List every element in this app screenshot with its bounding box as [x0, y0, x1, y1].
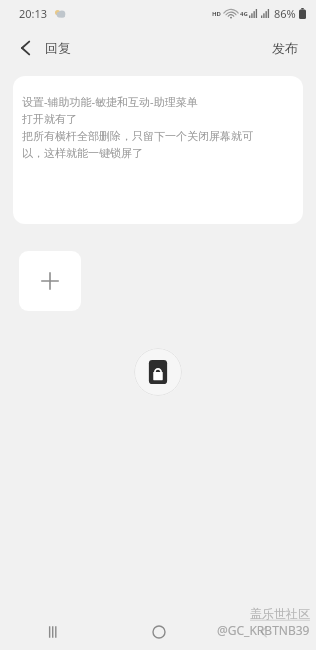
- button[interactable]: Recents: [0, 614, 106, 650]
- staticText: 发布: [272, 40, 298, 56]
- other: Back: [16, 38, 36, 58]
- button[interactable]: Lock screen: [134, 348, 182, 396]
- staticText: 设置-辅助功能-敏捷和互动-助理菜单: [22, 94, 198, 109]
- staticText: HD: [212, 10, 221, 18]
- staticText: 4G: [240, 10, 248, 18]
- button[interactable]: Back: [211, 614, 316, 650]
- button[interactable]: Back: [0, 30, 83, 66]
- staticText: 20:13: [19, 6, 48, 21]
- staticText: 86%: [274, 6, 296, 21]
- staticText: 打开就有了: [22, 112, 77, 126]
- button[interactable]: 发布: [254, 30, 316, 66]
- staticText: 回复: [45, 40, 71, 56]
- button[interactable]: Home: [106, 614, 211, 650]
- staticText: @GC_KRBTNB39: [217, 622, 310, 638]
- staticText: 把所有横杆全部删除，只留下一个关闭屏幕就可: [22, 129, 253, 143]
- staticText: 以，这样就能一键锁屏了: [22, 146, 143, 160]
- staticText: 盖乐世社区: [250, 606, 310, 621]
- button[interactable]: Add photo: [19, 251, 81, 311]
- button[interactable]: 设置-辅助功能-敏捷和互动-助理菜单: [13, 76, 303, 224]
